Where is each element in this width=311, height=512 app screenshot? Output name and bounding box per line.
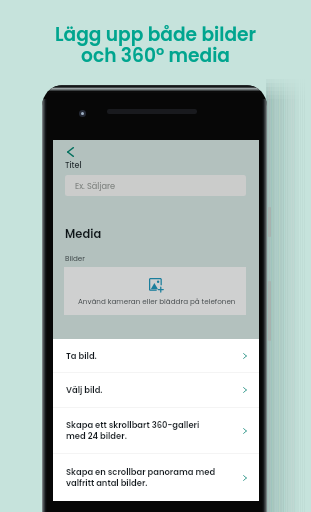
staticText: Bilder [65, 253, 85, 263]
button[interactable]: Ex. Säljare [65, 175, 246, 196]
button[interactable]: Back [59, 141, 81, 163]
staticText: Lägg upp både bilder och 360° media [55, 21, 256, 69]
staticText: Välj bild. [66, 384, 243, 396]
staticText: Ex. Säljare [75, 180, 116, 191]
button[interactable]: Välj bild. [53, 373, 259, 407]
staticText: Använd kameran eller bläddra på telefone… [78, 296, 236, 306]
button[interactable]: Använd kameran eller bläddra på telefone… [64, 267, 246, 315]
staticText: Skapa ett skrollbart 360-galleri med 24 … [66, 419, 243, 442]
staticText: Skapa en scrollbar panorama med valfritt… [66, 466, 243, 489]
button[interactable]: Ta bild. [53, 339, 259, 372]
button[interactable]: Skapa en scrollbar panorama med valfritt… [53, 454, 259, 501]
staticText: Titel [65, 160, 82, 171]
staticText: Ta bild. [66, 350, 243, 362]
button[interactable]: Skapa ett skrollbart 360-galleri med 24 … [53, 408, 259, 453]
staticText: Media [65, 226, 102, 242]
